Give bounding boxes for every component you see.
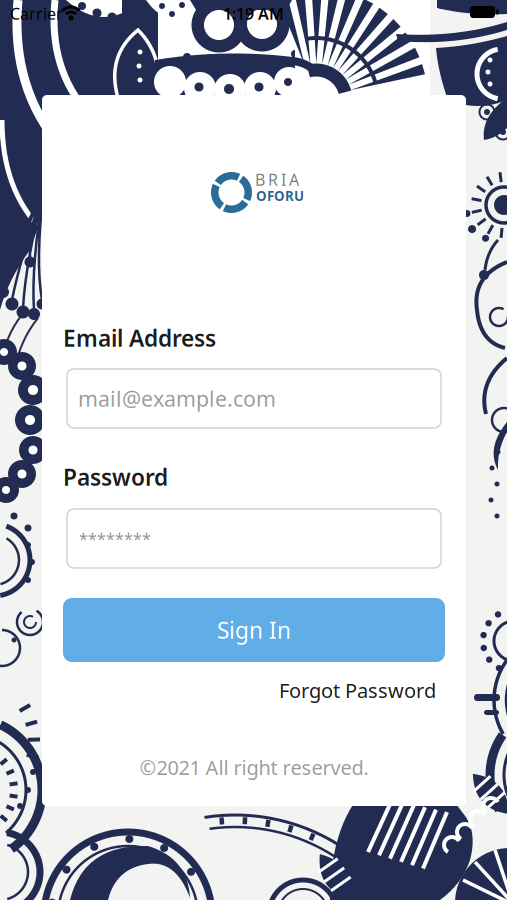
button[interactable]: Email Address <box>67 369 441 428</box>
staticText: 1:19 AM <box>223 3 284 24</box>
button[interactable]: Sign In <box>63 598 445 662</box>
staticText: Carrier <box>10 3 63 24</box>
staticText: ©2021 All right reserved. <box>139 754 368 781</box>
staticText: mail@example.com <box>78 384 276 413</box>
staticText: Password <box>63 462 168 492</box>
button[interactable]: Forgot Password <box>279 677 436 704</box>
staticText: Sign In <box>217 615 291 645</box>
staticText: OFORU <box>256 187 304 205</box>
staticText: Email Address <box>63 323 216 353</box>
staticText: Forgot Password <box>279 677 436 704</box>
staticText: ******** <box>79 528 151 549</box>
staticText: B R I A <box>255 169 299 190</box>
button[interactable]: Password <box>67 509 441 568</box>
